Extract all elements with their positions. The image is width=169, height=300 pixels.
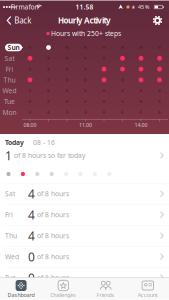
button[interactable]: Wed	[0, 246, 169, 267]
staticText: Back	[14, 15, 31, 26]
staticText: Dashboard	[8, 291, 35, 299]
staticText: Sun	[7, 43, 19, 52]
staticText: Tue	[4, 97, 15, 106]
button[interactable]: Back	[3, 13, 35, 27]
staticText: of 8 hours	[35, 231, 69, 240]
staticText: 0	[28, 270, 35, 286]
staticText: 08 - 16	[33, 138, 55, 147]
staticText: of 8 hours so far today	[12, 151, 85, 160]
staticText: Hourly Activity	[58, 15, 111, 26]
button[interactable]: Dashboard	[0, 277, 42, 299]
staticText: of 8 hours	[35, 273, 69, 282]
staticText: 11.00	[79, 121, 92, 129]
staticText: Hours with 250+ steps	[51, 29, 121, 38]
button[interactable]: Friends	[84, 277, 127, 299]
staticText: of 8 hours	[35, 252, 69, 261]
staticText: Mon	[2, 108, 16, 117]
staticText: 4	[28, 186, 35, 202]
staticText: 1	[5, 147, 12, 163]
staticText: Sat	[5, 189, 15, 198]
staticText: of 8 hours	[35, 210, 69, 219]
button[interactable]: Tue	[0, 267, 169, 288]
staticText: Thu	[3, 75, 15, 84]
staticText: *	[131, 3, 135, 12]
button[interactable]: Sat	[0, 183, 169, 204]
staticText: of 8 hours	[35, 189, 69, 198]
button[interactable]: Challenges	[42, 277, 84, 299]
staticText: 4	[28, 228, 35, 244]
staticText: Challenges	[50, 291, 76, 299]
staticText: 45 %	[138, 3, 149, 11]
staticText: 11.58	[75, 3, 93, 11]
staticText: Wed	[5, 252, 19, 261]
staticText: Wed	[2, 86, 16, 95]
staticText: 14.00	[134, 121, 147, 129]
staticText: Firmafon	[10, 3, 38, 11]
staticText: Fri	[5, 210, 13, 219]
button[interactable]: Account	[127, 277, 169, 299]
staticText: Today	[5, 138, 24, 147]
staticText: 4	[28, 207, 35, 223]
staticText: Sat	[4, 54, 14, 63]
staticText: Thu	[5, 231, 17, 240]
button[interactable]: Settings	[152, 15, 163, 26]
staticText: Account	[138, 291, 158, 299]
staticText: 08.00	[23, 121, 36, 129]
button[interactable]: Fri	[0, 204, 169, 225]
button[interactable]: 1	[0, 148, 169, 182]
staticText: Fri	[5, 65, 13, 74]
staticText: Friends	[97, 291, 115, 299]
staticText: Tue	[5, 273, 16, 282]
staticText: 0	[28, 249, 35, 265]
button[interactable]: Thu	[0, 225, 169, 246]
